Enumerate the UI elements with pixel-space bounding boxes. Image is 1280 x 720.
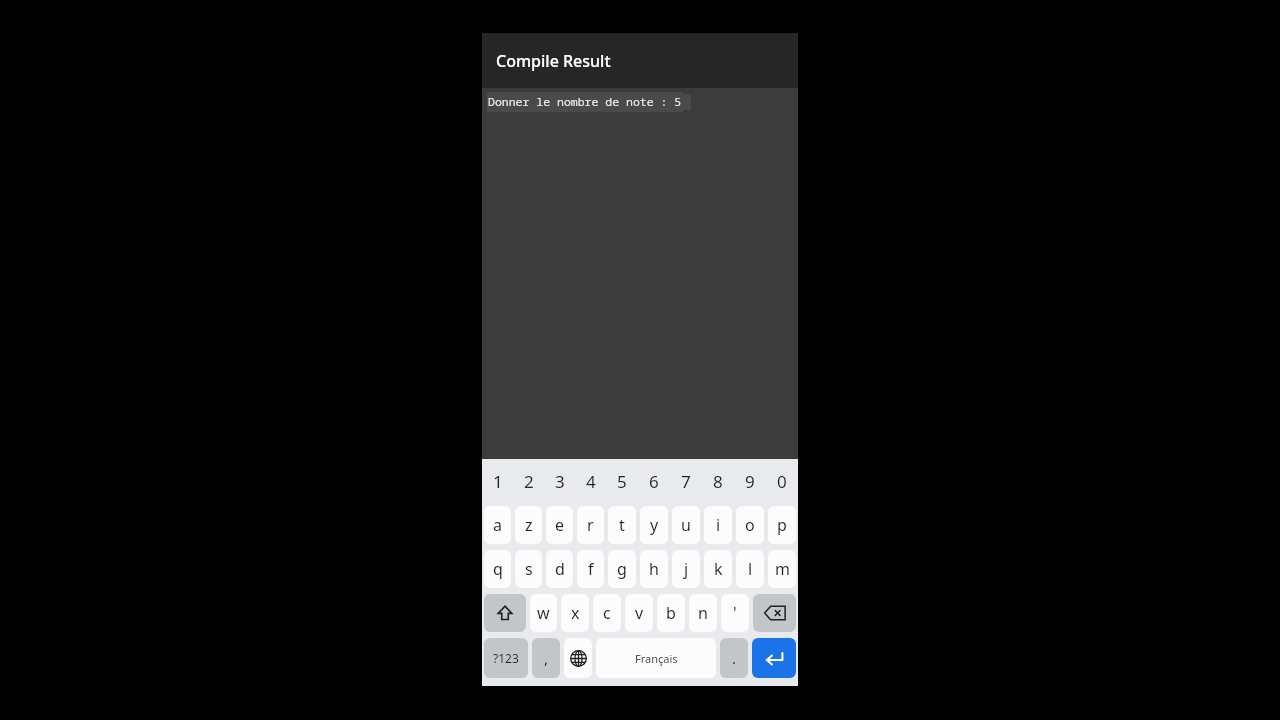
staticText: Donner le nombre de note : 5 (488, 94, 682, 110)
button[interactable]: n (689, 594, 717, 632)
staticText: a (493, 514, 502, 536)
button[interactable]: q (484, 550, 511, 588)
button[interactable]: w (530, 594, 557, 632)
button[interactable]: v (625, 594, 653, 632)
staticText: w (537, 602, 550, 624)
button[interactable]: g (608, 550, 636, 588)
staticText: . (732, 648, 737, 668)
button[interactable]: l (736, 550, 764, 588)
staticText: 3 (555, 470, 565, 493)
button[interactable]: f (577, 550, 604, 588)
button[interactable]: Backspace (753, 594, 796, 632)
staticText: c (603, 602, 611, 624)
button[interactable]: 0 (766, 459, 798, 503)
staticText: 4 (586, 470, 596, 493)
staticText: l (748, 558, 753, 580)
button[interactable]: u (672, 506, 700, 544)
button[interactable]: 5 (606, 459, 638, 503)
button[interactable]: Symbols (484, 638, 528, 678)
staticText: q (493, 558, 503, 580)
button[interactable]: d (546, 550, 573, 588)
button[interactable]: o (736, 506, 764, 544)
staticText: h (649, 558, 659, 580)
button[interactable]: m (768, 550, 796, 588)
staticText: z (525, 514, 533, 536)
staticText: x (571, 602, 580, 624)
staticText: 7 (681, 470, 691, 493)
staticText: 2 (524, 470, 534, 493)
button[interactable]: b (657, 594, 685, 632)
button[interactable]: 9 (734, 459, 766, 503)
staticText: g (617, 558, 627, 580)
staticText: n (698, 602, 708, 624)
button[interactable]: 4 (575, 459, 606, 503)
staticText: y (650, 514, 659, 536)
button[interactable]: Change language (564, 638, 592, 678)
staticText: 1 (493, 470, 503, 493)
button[interactable]: 2 (513, 459, 544, 503)
button[interactable]: a (484, 506, 511, 544)
staticText: o (745, 514, 755, 536)
button[interactable]: 6 (638, 459, 670, 503)
button[interactable]: c (593, 594, 621, 632)
button[interactable]: t (608, 506, 636, 544)
button[interactable]: y (640, 506, 668, 544)
button[interactable]: Space (596, 638, 716, 678)
button[interactable]: Enter (752, 638, 796, 678)
staticText: t (619, 514, 625, 536)
button[interactable]: i (704, 506, 732, 544)
staticText: 0 (777, 470, 787, 493)
button[interactable]: r (577, 506, 604, 544)
button[interactable]: 8 (702, 459, 734, 503)
staticText: Français (635, 651, 678, 666)
staticText: 6 (649, 470, 659, 493)
button[interactable]: ' (721, 594, 749, 632)
button[interactable]: k (704, 550, 732, 588)
staticText: p (777, 514, 787, 536)
staticText: , (544, 648, 549, 668)
staticText: e (555, 514, 565, 536)
button[interactable]: 3 (544, 459, 575, 503)
staticText: s (525, 558, 533, 580)
staticText: 5 (617, 470, 627, 493)
button[interactable]: h (640, 550, 668, 588)
staticText: f (588, 558, 594, 580)
button[interactable]: p (768, 506, 796, 544)
staticText: ?123 (493, 650, 519, 666)
button[interactable]: j (672, 550, 700, 588)
staticText: j (684, 558, 689, 580)
staticText: ' (733, 602, 737, 624)
button[interactable]: x (561, 594, 589, 632)
staticText: r (587, 514, 594, 536)
staticText: u (681, 514, 691, 536)
staticText: 8 (713, 470, 723, 493)
staticText: b (666, 602, 676, 624)
button[interactable]: 7 (670, 459, 702, 503)
staticText: k (714, 558, 723, 580)
button[interactable]: Comma (532, 638, 560, 678)
staticText: i (716, 514, 721, 536)
button[interactable]: z (515, 506, 542, 544)
staticText: Compile Result (496, 50, 611, 72)
staticText: d (555, 558, 565, 580)
staticText: m (775, 558, 790, 580)
button[interactable]: e (546, 506, 573, 544)
button[interactable]: Period (720, 638, 748, 678)
button[interactable]: 1 (482, 459, 513, 503)
button[interactable]: Shift (484, 594, 526, 632)
button[interactable]: s (515, 550, 542, 588)
staticText: 9 (745, 470, 755, 493)
staticText: v (635, 602, 644, 624)
